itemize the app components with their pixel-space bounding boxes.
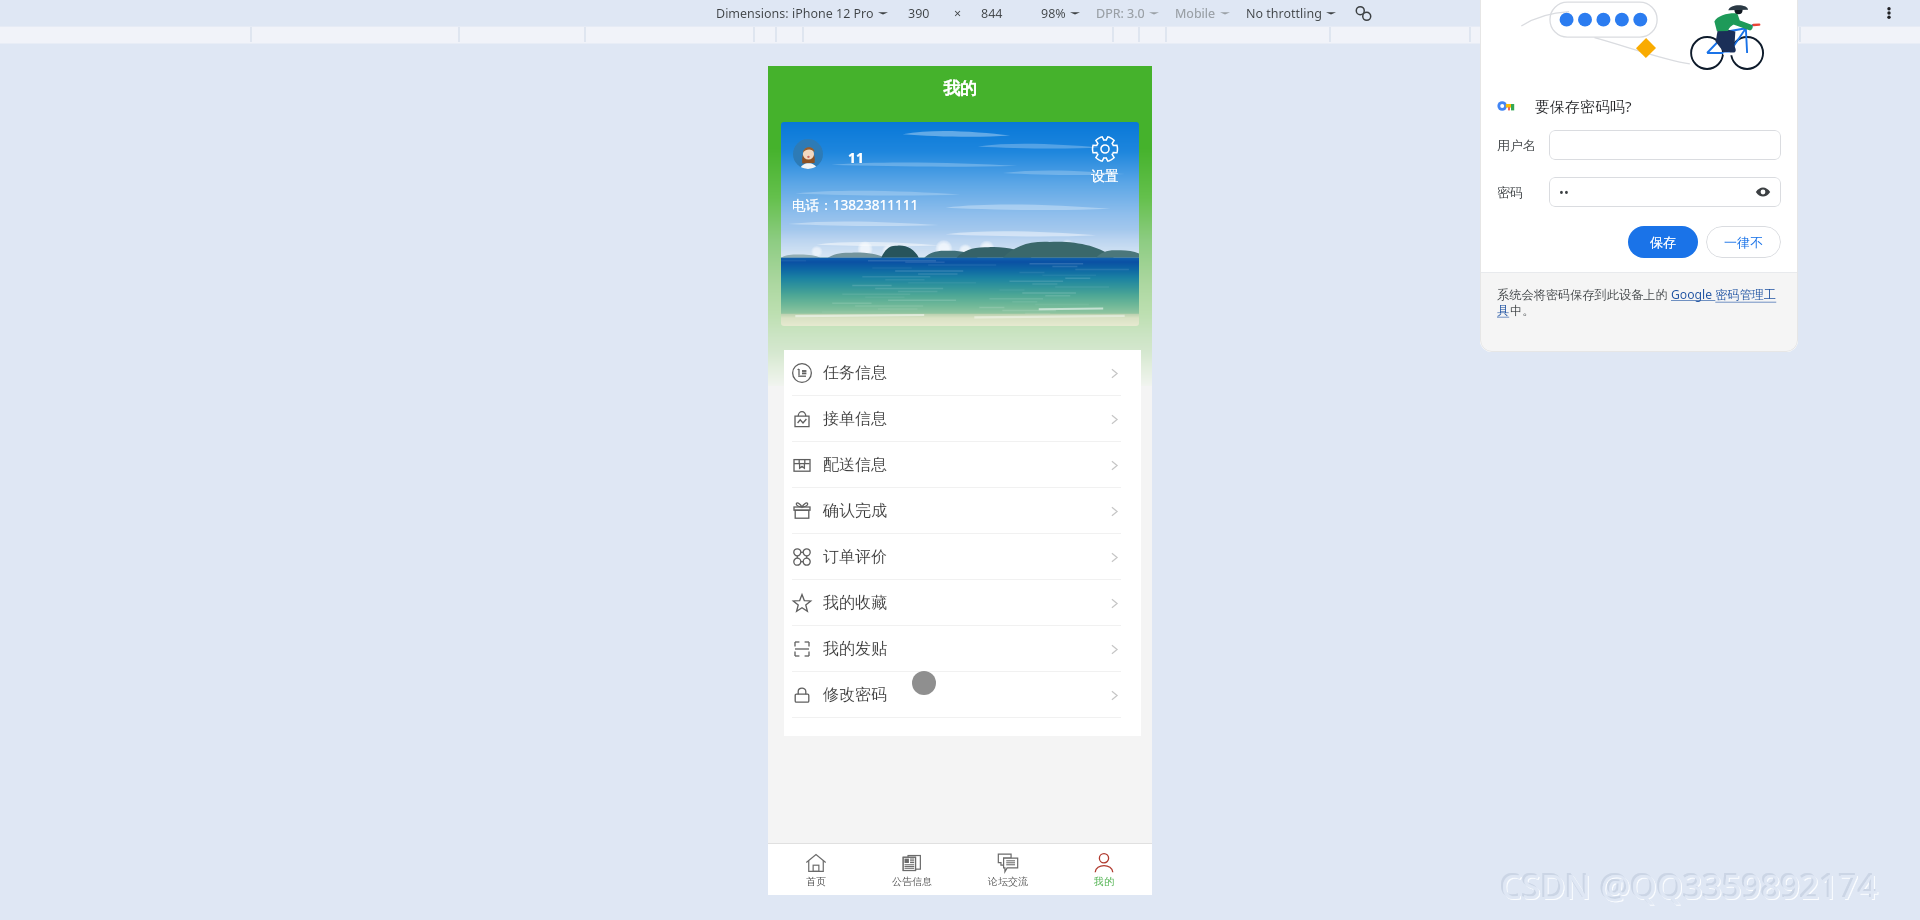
staticText: 我的 — [943, 78, 977, 99]
staticText: 390 — [908, 5, 930, 22]
staticText: 保存 — [1650, 234, 1676, 250]
button[interactable] — [1549, 130, 1781, 160]
button[interactable]: •• — [1549, 177, 1781, 207]
staticText: 98% — [1041, 5, 1066, 22]
staticText: 11 — [848, 148, 865, 167]
button[interactable]: 任务信息 — [792, 350, 1121, 396]
button[interactable]: 具 — [1497, 303, 1510, 318]
staticText: 修改密码 — [823, 685, 887, 705]
staticText: 首页 — [806, 875, 826, 888]
button[interactable]: 一律不 — [1706, 226, 1781, 258]
button[interactable]: More options — [1880, 4, 1898, 22]
button[interactable]: 论坛交流 — [960, 844, 1056, 895]
staticText: 论坛交流 — [988, 875, 1028, 888]
staticText: 我的发贴 — [823, 639, 887, 659]
staticText: 订单评价 — [823, 547, 887, 567]
staticText: DPR: 3.0 — [1096, 5, 1145, 22]
staticText: 接单信息 — [823, 409, 887, 429]
staticText: 844 — [981, 5, 1003, 22]
button[interactable]: 保存 — [1628, 226, 1698, 258]
staticText: 系统会将密码保存到此设备上的 — [1497, 286, 1671, 303]
staticText: •• — [1559, 183, 1569, 201]
other: Rotate — [1354, 4, 1373, 23]
staticText: 配送信息 — [823, 455, 887, 475]
staticText: 设置 — [1091, 168, 1119, 186]
staticText: CSDN @QQ3359892174 — [1499, 862, 1877, 907]
button[interactable]: 我的发贴 — [792, 626, 1121, 672]
staticText: CSDN @QQ3359892174 — [1501, 864, 1879, 909]
staticText: 任务信息 — [823, 363, 887, 383]
staticText: 电话：13823811111 — [792, 195, 919, 214]
staticText: 确认完成 — [823, 501, 887, 521]
button[interactable]: 订单评价 — [792, 534, 1121, 580]
button[interactable]: 公告信息 — [864, 844, 960, 895]
other: Show password — [1755, 184, 1771, 200]
staticText: 我的 — [1094, 875, 1114, 888]
button[interactable]: 我的收藏 — [792, 580, 1121, 626]
button[interactable]: 确认完成 — [792, 488, 1121, 534]
staticText: × — [954, 5, 962, 22]
staticText: 用户名 — [1497, 137, 1536, 153]
button[interactable]: Google 密码管理工 — [1671, 286, 1777, 303]
button[interactable]: 设置 — [1091, 136, 1119, 186]
button[interactable]: 我的 — [1056, 844, 1152, 895]
button[interactable]: 接单信息 — [792, 396, 1121, 442]
staticText: Dimensions: iPhone 12 Pro — [716, 5, 874, 22]
button[interactable]: 首页 — [768, 844, 864, 895]
staticText: 一律不 — [1724, 234, 1763, 250]
staticText: 中。 — [1510, 303, 1535, 318]
staticText: 我的收藏 — [823, 593, 887, 613]
staticText: 密码 — [1497, 184, 1523, 200]
staticText: CSDN @QQ3359892174 — [1502, 865, 1880, 910]
staticText: 要保存密码吗? — [1535, 96, 1632, 116]
button[interactable]: 修改密码 — [792, 672, 1121, 718]
staticText: No throttling — [1246, 5, 1322, 22]
staticText: 公告信息 — [892, 875, 932, 888]
button[interactable]: 配送信息 — [792, 442, 1121, 488]
staticText: Mobile — [1175, 5, 1216, 22]
